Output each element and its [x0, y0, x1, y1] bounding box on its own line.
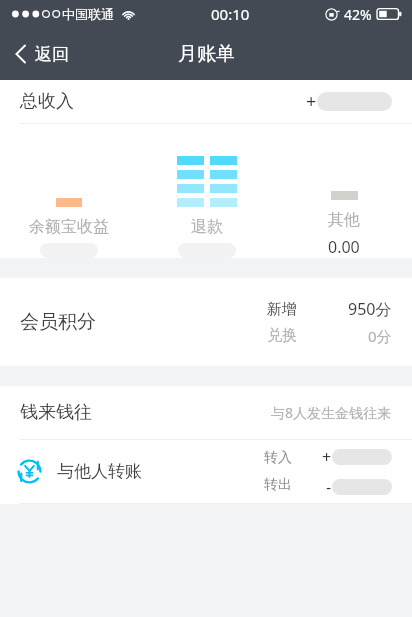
button[interactable]: 会员积分	[0, 278, 412, 366]
staticText: 转出	[264, 476, 292, 494]
staticText: 返回	[35, 44, 69, 65]
button[interactable]: 返回	[0, 28, 87, 80]
staticText: 新增	[267, 300, 297, 319]
staticText: 月账单	[178, 42, 235, 66]
staticText: 总收入	[20, 90, 74, 113]
staticText: +	[322, 446, 332, 468]
staticText: 钱来钱往	[20, 401, 92, 424]
staticText: 转入	[264, 449, 292, 467]
staticText: 退款	[191, 217, 223, 237]
other: 与他人转账	[17, 459, 42, 484]
staticText: 950分	[348, 298, 392, 320]
staticText: -	[326, 476, 332, 498]
staticText: 0.00	[328, 236, 360, 258]
staticText: 与他人转账	[57, 461, 142, 482]
staticText: 余额宝收益	[29, 217, 109, 237]
staticText: 兑换	[267, 326, 297, 345]
staticText: 会员积分	[20, 310, 96, 334]
staticText: 与8人发生金钱往来	[271, 403, 392, 422]
staticText: 中国联通	[62, 6, 114, 22]
staticText: +	[306, 89, 317, 114]
button[interactable]: 与他人转账	[0, 440, 412, 503]
staticText: 其他	[328, 210, 360, 230]
staticText: 42%	[344, 5, 372, 24]
staticText: 00:10	[211, 4, 250, 24]
staticText: 0分	[368, 326, 392, 346]
